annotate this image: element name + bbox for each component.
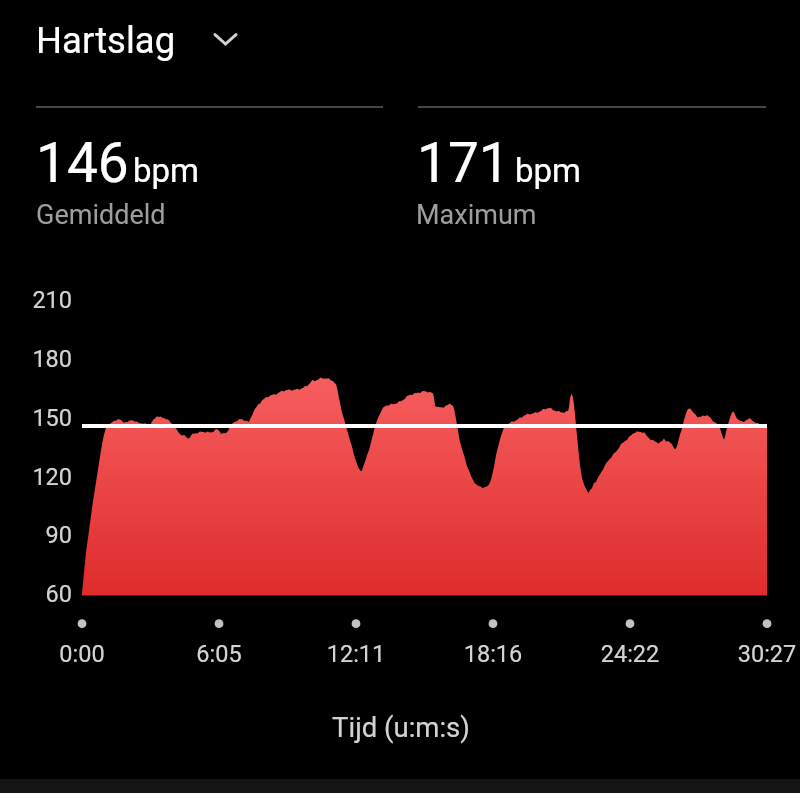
staticText: bpm [515,151,581,190]
staticText: Tijd (u:m:s) [201,711,601,743]
staticText: 60 [0,580,72,608]
staticText: 146 [36,131,129,195]
staticText: 24:22 [580,640,680,668]
staticText: 18:16 [443,640,543,668]
staticText: 180 [0,345,72,373]
staticText: Hartslag [36,19,176,62]
staticText: 120 [0,463,72,491]
staticText: 6:05 [169,640,269,668]
staticText: Gemiddeld [36,199,166,231]
button[interactable]: Hartslag [28,8,248,68]
other: Change metric [207,22,243,58]
staticText: bpm [133,151,199,190]
staticText: 0:00 [32,640,132,668]
staticText: 150 [0,404,72,432]
staticText: 210 [0,286,72,314]
staticText: Maximum [416,199,537,231]
staticText: 30:27 [717,640,800,668]
staticText: 12:11 [306,640,406,668]
staticText: 171 [417,131,510,195]
staticText: 90 [0,521,72,549]
